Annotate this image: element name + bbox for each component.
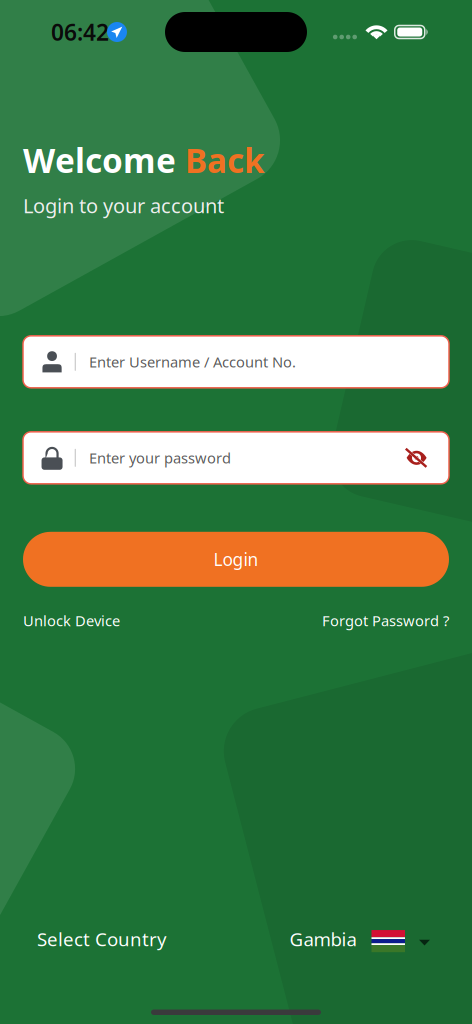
staticText: Welcome [23, 138, 185, 182]
staticText: Enter your password [89, 448, 231, 468]
button[interactable]: Gambia [289, 927, 430, 951]
staticText: 06:42 [51, 17, 109, 47]
staticText: Login to your account [23, 192, 224, 219]
staticText: Login [213, 548, 258, 571]
button[interactable]: Unlock Device [23, 611, 120, 630]
staticText: Gambia [289, 927, 356, 951]
staticText: Unlock Device [23, 611, 120, 630]
staticText: Forgot Password ? [322, 611, 449, 630]
staticText: Back [185, 138, 265, 182]
staticText: Select Country [37, 927, 167, 951]
button[interactable]: Forgot Password ? [322, 611, 449, 630]
button[interactable]: Login [23, 532, 449, 587]
staticText: Enter Username / Account No. [89, 352, 296, 372]
